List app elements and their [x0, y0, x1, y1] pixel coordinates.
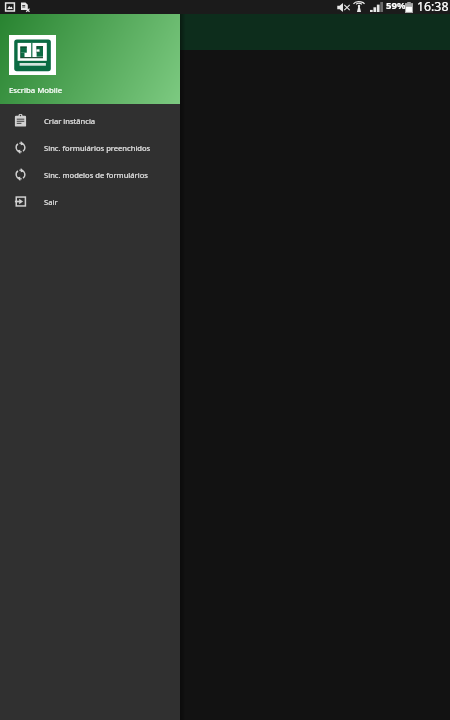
staticText: 16:38 — [417, 0, 449, 12]
staticText: Criar instância — [44, 116, 96, 126]
staticText: Sair — [44, 197, 58, 207]
button[interactable]: Sinc. modelos de formulários — [0, 161, 180, 188]
button[interactable]: Sair — [0, 188, 180, 215]
staticText: Escriba Mobile — [9, 85, 63, 96]
staticText: Sinc. formulários preenchidos — [44, 143, 151, 153]
button[interactable]: Sinc. formulários preenchidos — [0, 134, 180, 161]
staticText: Sinc. modelos de formulários — [44, 170, 148, 180]
button[interactable]: Criar instância — [0, 107, 180, 134]
staticText: 59% — [386, 0, 406, 12]
